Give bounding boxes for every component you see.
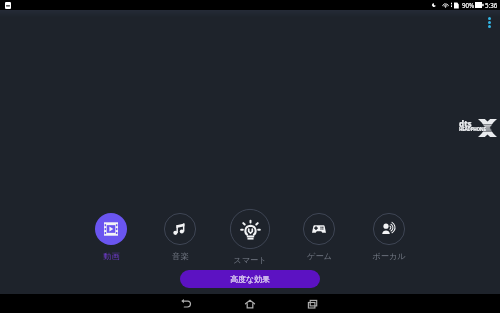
staticText: 90% <box>462 1 475 9</box>
button[interactable]: 音楽 <box>156 208 204 264</box>
button[interactable]: ボーカル <box>365 208 413 264</box>
button[interactable]: 高度な効果 <box>180 270 320 288</box>
staticText: スマート <box>233 255 267 265</box>
staticText: 音楽 <box>172 251 189 261</box>
button[interactable]: ゲーム <box>295 208 343 264</box>
button[interactable]: More options <box>480 13 498 31</box>
button[interactable]: Back <box>176 294 196 313</box>
staticText: ゲーム <box>307 251 332 261</box>
staticText: 5:36 <box>485 1 498 9</box>
button[interactable]: 動画 <box>87 208 135 264</box>
staticText: 高度な効果 <box>230 274 271 284</box>
button[interactable]: Home <box>240 294 260 313</box>
staticText: HEADPHONE <box>459 126 486 132</box>
button[interactable]: Recents <box>303 294 323 313</box>
staticText: 動画 <box>103 251 120 261</box>
staticText: ボーカル <box>372 251 406 261</box>
staticText: dts <box>459 118 472 129</box>
button[interactable]: スマート <box>226 208 274 264</box>
